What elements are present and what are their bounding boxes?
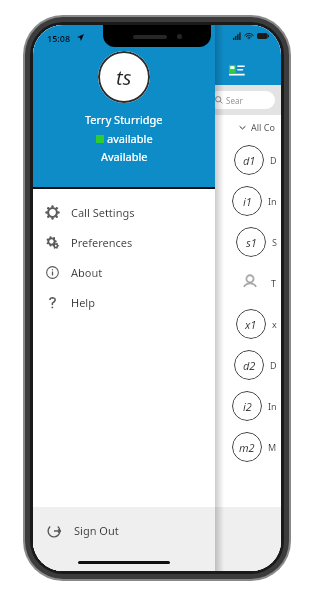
staticText: i2 [243, 399, 252, 414]
staticText: Help [71, 295, 95, 310]
button[interactable]: T [33, 262, 281, 303]
button[interactable]: i1 [33, 180, 281, 221]
staticText: Sign Out [74, 523, 119, 538]
button[interactable]: All Co [33, 115, 281, 139]
button[interactable]: Contacts [33, 507, 281, 553]
button[interactable]: Directory [229, 63, 245, 79]
staticText: ts [116, 64, 132, 91]
staticText: Available [101, 149, 148, 164]
button[interactable]: About [33, 257, 215, 287]
staticText: All Co [251, 121, 275, 133]
button[interactable]: d1 [33, 139, 281, 180]
button[interactable]: Preferences [33, 227, 215, 257]
staticText: available [107, 131, 153, 146]
button[interactable]: Call Settings [33, 197, 215, 227]
staticText: Sear [226, 95, 243, 106]
staticText: 15:08 [47, 32, 71, 44]
staticText: S [272, 236, 277, 248]
staticText: s1 [246, 235, 257, 250]
staticText: Preferences [71, 235, 133, 250]
staticText: In [268, 195, 277, 207]
button[interactable]: s1 [33, 221, 281, 262]
staticText: D [270, 154, 277, 166]
button[interactable]: i2 [33, 385, 281, 426]
staticText: x [272, 318, 277, 330]
staticText: m2 [239, 440, 255, 455]
staticText: Call Settings [71, 205, 135, 220]
staticText: x1 [245, 317, 257, 332]
staticText: Terry Sturridge [85, 112, 163, 127]
button[interactable]: Help [33, 287, 215, 317]
button[interactable]: d2 [33, 344, 281, 385]
staticText: i1 [243, 194, 252, 209]
staticText: d2 [243, 358, 256, 373]
button[interactable]: m2 [33, 426, 281, 467]
button[interactable]: Sear [209, 91, 275, 109]
staticText: D [270, 359, 277, 371]
staticText: About [71, 265, 103, 280]
staticText: In [268, 400, 277, 412]
button[interactable]: x1 [33, 303, 281, 344]
staticText: T [271, 277, 277, 289]
staticText: d1 [243, 153, 256, 168]
button[interactable]: Sign Out [33, 507, 215, 553]
staticText: M [268, 441, 277, 453]
